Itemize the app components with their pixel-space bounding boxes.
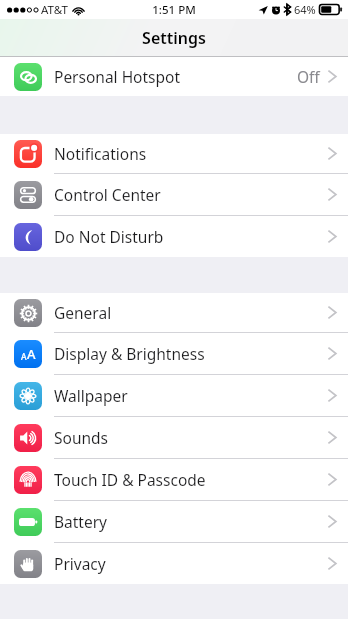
button[interactable]: Notifications <box>0 134 348 173</box>
staticText: Touch ID & Passcode <box>54 469 206 490</box>
staticText: Personal Hotspot <box>54 66 181 87</box>
staticText: Display & Brightness <box>54 343 205 364</box>
staticText: Battery <box>54 511 108 532</box>
button[interactable]: A <box>0 333 348 374</box>
button[interactable]: Personal Hotspot <box>0 57 348 96</box>
staticText: Settings <box>142 27 206 49</box>
staticText: 64% <box>294 2 316 17</box>
staticText: Off <box>297 66 320 87</box>
staticText: Notifications <box>54 143 147 164</box>
staticText: Sounds <box>54 427 109 448</box>
button[interactable]: General <box>0 293 348 332</box>
button[interactable]: Control Center <box>0 174 348 215</box>
staticText: A <box>21 351 27 363</box>
button[interactable]: Wallpaper <box>0 375 348 416</box>
staticText: A <box>27 345 36 363</box>
button[interactable]: Do Not Disturb <box>0 216 348 257</box>
staticText: Wallpaper <box>54 385 128 406</box>
button[interactable]: Battery <box>0 501 348 542</box>
staticText: AT&T <box>41 2 68 18</box>
button[interactable]: Privacy <box>0 543 348 584</box>
staticText: Do Not Disturb <box>54 226 164 247</box>
staticText: 1:51 PM <box>152 2 196 18</box>
staticText: Privacy <box>54 553 106 574</box>
staticText: General <box>54 302 112 323</box>
staticText: Control Center <box>54 184 161 205</box>
button[interactable]: Touch ID & Passcode <box>0 459 348 500</box>
button[interactable]: Sounds <box>0 417 348 458</box>
